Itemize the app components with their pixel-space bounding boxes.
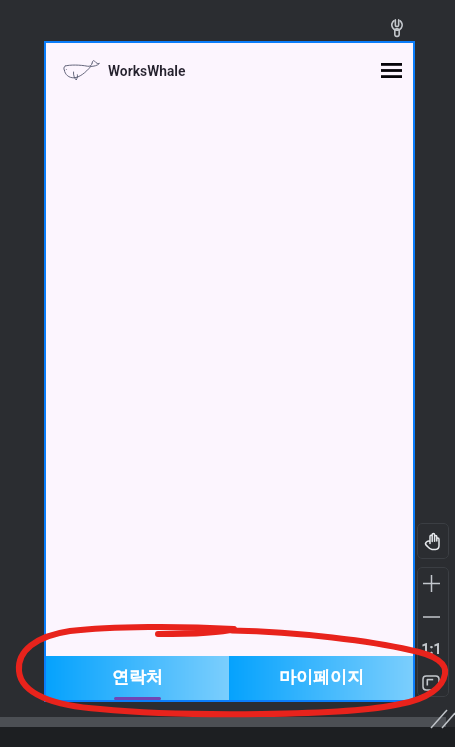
button[interactable]: Pan	[417, 523, 449, 559]
staticText: 마이페이지	[279, 667, 364, 688]
button[interactable]: Zoom in	[415, 567, 447, 600]
button[interactable]: Zoom out	[415, 600, 447, 633]
button[interactable]: Fit to window	[415, 666, 447, 699]
button[interactable]: Actual size	[415, 632, 447, 665]
button[interactable]: 연락처	[46, 656, 229, 700]
button[interactable]: 마이페이지	[229, 656, 413, 700]
button[interactable]: Menu	[374, 53, 408, 87]
button[interactable]: Settings	[382, 13, 412, 43]
staticText: WorksWhale	[108, 63, 186, 79]
staticText: 1:1	[421, 641, 442, 657]
staticText: 연락처	[112, 667, 163, 688]
